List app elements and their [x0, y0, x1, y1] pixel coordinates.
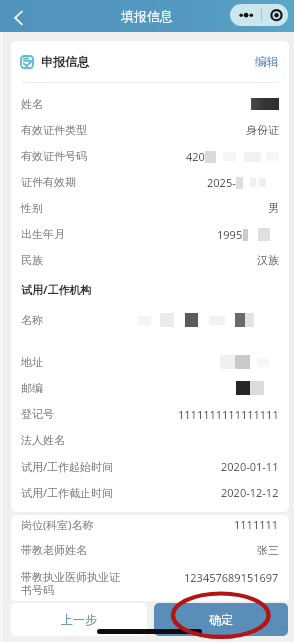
staticText: 试用/工作机构: [21, 282, 92, 297]
button[interactable]: 岗位(科室)名称: [11, 515, 289, 534]
button[interactable]: 确定: [154, 603, 288, 636]
staticText: 张三: [257, 543, 279, 557]
button[interactable]: 申报信息: [11, 41, 289, 82]
button[interactable]: 地址: [11, 349, 289, 375]
staticText: 2025-: [207, 175, 236, 190]
staticText: 确定: [209, 612, 233, 627]
button[interactable]: 名称: [11, 306, 289, 349]
staticText: 420: [186, 149, 205, 164]
staticText: 姓名: [21, 97, 43, 111]
staticText: 名称: [21, 313, 43, 325]
button[interactable]: Back: [4, 4, 32, 32]
staticText: 带教老师姓名: [21, 543, 87, 557]
staticText: 岗位(科室)名称: [21, 517, 94, 532]
button[interactable]: 性别: [11, 195, 289, 221]
staticText: 民族: [21, 253, 43, 267]
button[interactable]: 民族: [11, 247, 289, 273]
staticText: 有效证件号码: [21, 149, 87, 163]
staticText: 上一步: [61, 612, 97, 627]
staticText: 编辑: [255, 54, 279, 69]
button[interactable]: 带教执业医师执业证 书号码: [11, 566, 289, 602]
staticText: 2020-12-12: [221, 485, 279, 500]
staticText: 1995: [217, 227, 243, 242]
button[interactable]: 有效证件号码: [11, 143, 289, 169]
staticText: 出生年月: [21, 227, 65, 241]
button[interactable]: 有效证件类型: [11, 117, 289, 143]
button[interactable]: 出生年月: [11, 221, 289, 247]
button[interactable]: 登记号: [11, 401, 289, 427]
staticText: 2020-01-11: [221, 459, 279, 474]
staticText: 试用/工作起始时间: [21, 459, 114, 474]
button[interactable]: 证件有效期: [11, 169, 289, 195]
button[interactable]: 试用/工作截止时间: [11, 479, 289, 505]
staticText: 法人姓名: [21, 433, 65, 447]
button[interactable]: 邮编: [11, 375, 289, 401]
button[interactable]: 带教老师姓名: [11, 534, 289, 566]
staticText: 身份证: [246, 123, 279, 137]
staticText: 123457689151697: [184, 570, 279, 585]
button[interactable]: 编辑: [255, 54, 279, 69]
staticText: 登记号: [21, 407, 54, 421]
staticText: 性别: [21, 201, 43, 215]
staticText: 汉族: [257, 253, 279, 267]
staticText: 有效证件类型: [21, 123, 87, 137]
staticText: 填报信息: [121, 8, 173, 24]
staticText: 试用/工作截止时间: [21, 485, 114, 500]
staticText: 邮编: [21, 381, 43, 395]
staticText: 证件有效期: [21, 175, 76, 189]
staticText: 申报信息: [41, 54, 89, 69]
button[interactable]: 姓名: [11, 91, 289, 117]
staticText: 1111111111111111: [178, 407, 279, 422]
button[interactable]: More options: [230, 4, 288, 26]
staticText: 1111111: [234, 517, 279, 532]
staticText: 带教执业医师执业证 书号码: [21, 570, 120, 597]
button[interactable]: 上一步: [11, 603, 147, 636]
button[interactable]: 试用/工作起始时间: [11, 453, 289, 479]
staticText: 地址: [21, 355, 43, 369]
staticText: 男: [268, 201, 279, 215]
button[interactable]: 法人姓名: [11, 427, 289, 453]
